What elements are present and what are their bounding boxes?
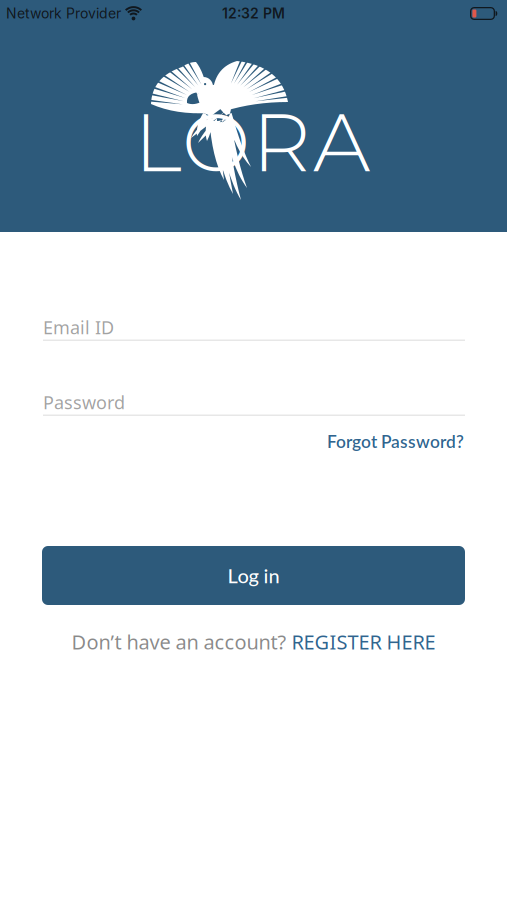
staticText: Don’t have an account?: [71, 628, 291, 655]
button[interactable]: Log in: [42, 546, 465, 605]
button[interactable]: Forgot Password?: [327, 431, 464, 452]
staticText: Network Provider: [6, 5, 121, 22]
staticText: REGISTER HERE: [291, 628, 435, 655]
button[interactable]: Email ID: [43, 315, 465, 341]
staticText: Forgot Password?: [327, 431, 464, 452]
staticText: Password: [43, 390, 125, 414]
button[interactable]: Password: [43, 390, 465, 416]
staticText: LORA: [134, 92, 370, 191]
button[interactable]: Don’t have an account?: [71, 628, 435, 655]
staticText: Log in: [227, 563, 279, 587]
staticText: 12:32 PM: [222, 5, 285, 22]
staticText: Email ID: [43, 315, 114, 339]
